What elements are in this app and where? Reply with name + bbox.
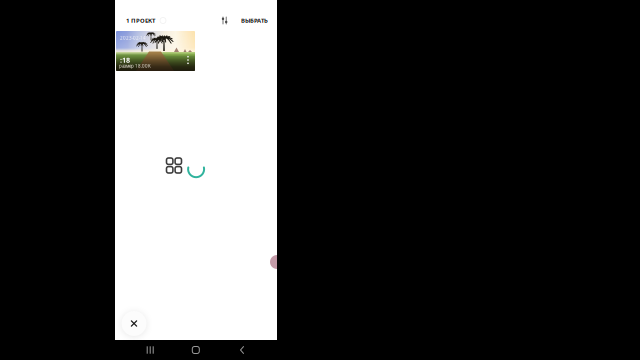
button[interactable]: 1 ПРОЕКТ bbox=[126, 16, 155, 25]
button[interactable]: Information bbox=[155, 16, 168, 25]
staticText: ВЫБРАТЬ bbox=[241, 16, 268, 24]
button[interactable]: Home bbox=[186, 340, 205, 359]
button[interactable]: Sort order bbox=[219, 16, 230, 25]
button[interactable]: Recent apps bbox=[141, 340, 160, 360]
button[interactable]: Close bbox=[120, 310, 147, 337]
staticText: :18 bbox=[120, 55, 130, 65]
staticText: 1 ПРОЕКТ bbox=[126, 16, 155, 25]
staticText: размер 18.00K bbox=[119, 63, 151, 69]
button[interactable]: Back bbox=[234, 340, 250, 360]
staticText: 2023-02-14 bbox=[120, 35, 146, 41]
button[interactable]: ВЫБРАТЬ bbox=[230, 16, 268, 25]
button[interactable]: More options bbox=[184, 53, 192, 67]
